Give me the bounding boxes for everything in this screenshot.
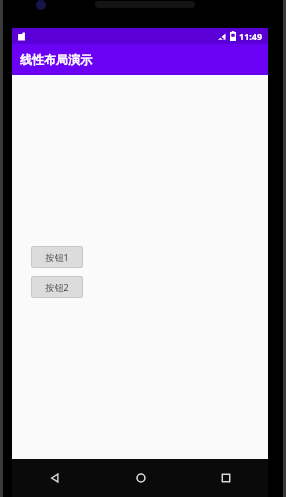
staticText: 线性布局演示 (20, 52, 92, 67)
staticText: 按钮1 (45, 251, 69, 263)
button[interactable]: Recent apps (183, 459, 268, 497)
staticText: 按钮2 (45, 281, 69, 293)
staticText: 11:49 (239, 30, 263, 42)
button[interactable]: Back (12, 459, 98, 497)
button[interactable]: 按钮2 (31, 276, 83, 298)
button[interactable]: Home (98, 459, 183, 497)
button[interactable]: 按钮1 (31, 246, 83, 268)
